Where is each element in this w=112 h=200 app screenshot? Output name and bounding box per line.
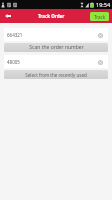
staticText: Track Order	[38, 13, 65, 19]
staticText: Scan the order number	[29, 44, 84, 51]
staticText: Track	[94, 14, 106, 20]
button[interactable]: Select from the recently used	[4, 70, 108, 79]
button[interactable]: 48005	[4, 55, 108, 68]
staticText: 664321	[7, 32, 23, 38]
staticText: 19:54	[96, 1, 111, 8]
button[interactable]: Track	[90, 12, 109, 21]
button[interactable]: Clear text	[98, 60, 103, 65]
button[interactable]: Clear text	[98, 33, 103, 38]
button[interactable]: Back	[0, 9, 15, 23]
staticText: 48005	[7, 59, 20, 65]
button[interactable]: Scan the order number	[4, 43, 108, 52]
staticText: Select from the recently used	[25, 72, 87, 78]
button[interactable]: 664321	[4, 28, 108, 41]
